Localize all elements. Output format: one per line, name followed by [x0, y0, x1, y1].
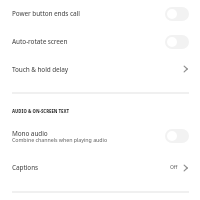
button[interactable]: Mono audio, off — [165, 129, 189, 143]
staticText: Touch & hold delay — [12, 65, 69, 74]
staticText: Power button ends call — [12, 9, 80, 18]
button[interactable]: Captions — [0, 155, 200, 181]
staticText: Auto-rotate screen — [12, 37, 68, 46]
staticText: Combine channels when playing audio — [12, 136, 108, 143]
staticText: Off — [170, 164, 178, 171]
staticText: Captions — [12, 163, 39, 172]
button[interactable]: Auto-rotate screen, off — [165, 35, 189, 49]
staticText: Mono audio — [12, 129, 48, 138]
button[interactable]: Touch & hold delay — [0, 56, 200, 84]
button[interactable]: Power button ends call — [0, 0, 200, 28]
button[interactable]: Power button ends call, off — [165, 7, 189, 21]
button[interactable]: Auto-rotate screen — [0, 28, 200, 56]
button[interactable]: Mono audio — [0, 122, 200, 148]
staticText: AUDIO & ON-SCREEN TEXT — [12, 108, 70, 114]
